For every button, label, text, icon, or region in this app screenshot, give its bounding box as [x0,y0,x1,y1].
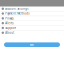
staticText: Account Settings [5,7,28,10]
button[interactable]: Privacy [0,16,64,21]
button[interactable]: Alerts [0,21,64,25]
button[interactable]: Support [0,26,64,30]
button[interactable]: Account Settings [0,6,64,11]
staticText: Payment Methods [5,12,29,15]
staticText: Save [29,43,34,46]
button[interactable]: Payment Methods [0,11,64,16]
staticText: Alerts [5,21,13,25]
button[interactable]: Save [4,42,60,47]
staticText: About [5,31,14,34]
staticText: Support [5,26,16,30]
staticText: Privacy [5,17,13,20]
button[interactable]: About [0,30,64,35]
